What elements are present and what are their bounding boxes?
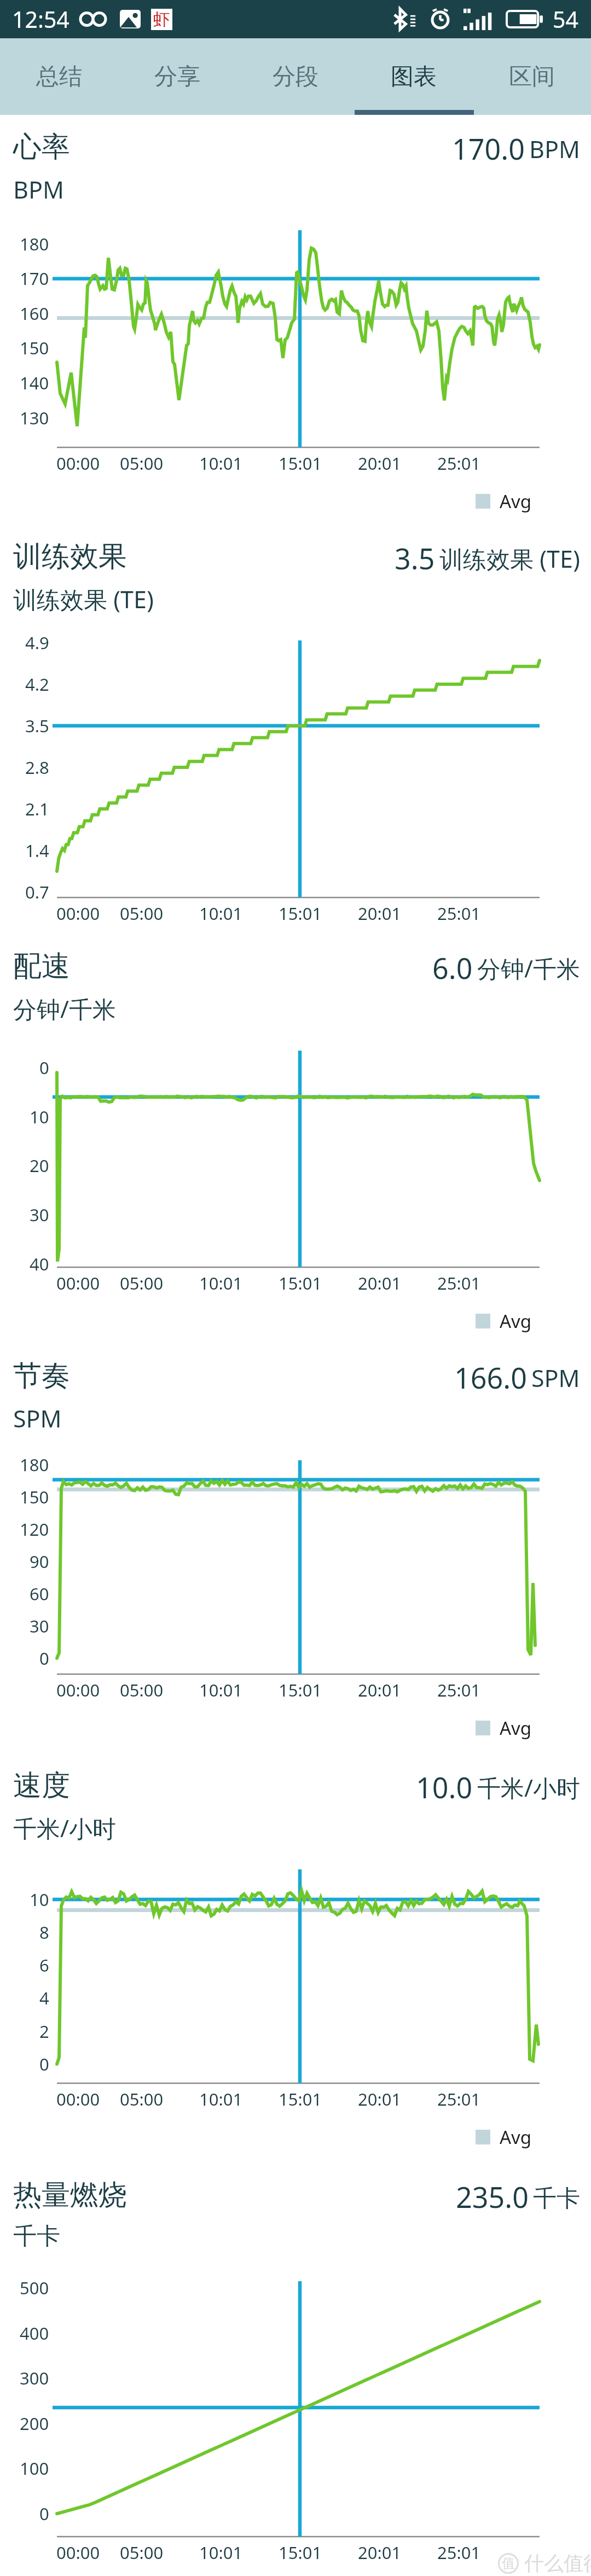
staticText: 3.5 [25, 714, 49, 737]
staticText: 130 [20, 406, 49, 429]
staticText: Avg [500, 489, 532, 514]
staticText: 6.0 [432, 948, 473, 987]
button[interactable]: 总结 [0, 38, 118, 115]
staticText: 15:01 [279, 452, 322, 475]
staticText: BPM [13, 173, 64, 206]
staticText: 2.1 [25, 797, 49, 820]
staticText: 0 [39, 2502, 49, 2525]
staticText: 00:00 [56, 452, 100, 475]
staticText: 什么值得买 [524, 2551, 591, 2575]
staticText: 总结 [36, 62, 82, 91]
staticText: 6 [39, 1954, 49, 1977]
staticText: 400 [20, 2322, 49, 2345]
staticText: 千卡 [13, 2222, 60, 2251]
staticText: 20:01 [358, 1679, 402, 1701]
staticText: 8 [39, 1921, 49, 1944]
staticText: 100 [20, 2457, 49, 2480]
staticText: 10:01 [199, 2088, 243, 2111]
button[interactable]: 分享 [118, 38, 236, 115]
staticText: 分钟/千米 [477, 952, 580, 984]
staticText: 训练效果 [13, 539, 127, 575]
staticText: 05:00 [120, 902, 164, 925]
staticText: 千卡 [533, 2184, 580, 2213]
staticText: 200 [20, 2412, 49, 2435]
staticText: 25:01 [437, 1272, 481, 1295]
staticText: 10:01 [199, 1272, 243, 1295]
staticText: 4 [39, 1986, 49, 2009]
staticText: 0.7 [25, 881, 49, 904]
staticText: 分享 [154, 62, 200, 91]
staticText: 30 [30, 1615, 49, 1637]
staticText: 10 [30, 1888, 49, 1911]
button[interactable]: 分段 [236, 38, 355, 115]
staticText: 25:01 [437, 902, 481, 925]
staticText: 3.5 [395, 539, 435, 578]
staticText: 60 [30, 1582, 49, 1605]
staticText: 300 [20, 2367, 49, 2389]
staticText: BPM [529, 133, 580, 165]
staticText: 54 [553, 4, 578, 34]
staticText: 分段 [273, 62, 318, 91]
staticText: 热量燃烧 [13, 2177, 127, 2213]
staticText: 00:00 [56, 902, 100, 925]
staticText: 训练效果 (TE) [439, 543, 580, 575]
staticText: 4.2 [25, 673, 49, 696]
staticText: 180 [20, 232, 49, 255]
staticText: 图表 [391, 62, 437, 91]
staticText: 00:00 [56, 1679, 100, 1701]
staticText: 10 [30, 1105, 49, 1128]
staticText: 20 [30, 1154, 49, 1177]
staticText: Avg [500, 2125, 532, 2149]
staticText: 05:00 [120, 2541, 164, 2564]
staticText: 节奏 [13, 1358, 70, 1394]
staticText: 12:54 [12, 4, 69, 34]
staticText: 心率 [13, 129, 70, 165]
staticText: 10:01 [199, 452, 243, 475]
staticText: 配速 [13, 948, 70, 984]
staticText: 10.0 [416, 1768, 473, 1806]
staticText: 00:00 [56, 2541, 100, 2564]
staticText: 120 [20, 1518, 49, 1541]
staticText: 25:01 [437, 452, 481, 475]
staticText: 15:01 [279, 902, 322, 925]
staticText: 训练效果 (TE) [13, 583, 154, 615]
staticText: 2 [39, 2020, 49, 2043]
staticText: 140 [20, 371, 49, 394]
staticText: 05:00 [120, 452, 164, 475]
staticText: 10:01 [199, 1679, 243, 1701]
staticText: 150 [20, 1485, 49, 1508]
staticText: 25:01 [437, 2088, 481, 2111]
staticText: 166.0 [454, 1358, 527, 1397]
staticText: 千米/小时 [13, 1812, 116, 1844]
staticText: SPM [13, 1402, 62, 1435]
staticText: SPM [531, 1362, 580, 1394]
staticText: 15:01 [279, 2541, 322, 2564]
staticText: 0 [39, 1647, 49, 1670]
staticText: 千米/小时 [477, 1771, 580, 1804]
staticText: 区间 [509, 62, 555, 91]
staticText: 0 [39, 1056, 49, 1079]
staticText: 05:00 [120, 2088, 164, 2111]
button[interactable]: 区间 [473, 38, 591, 115]
staticText: Avg [500, 1716, 532, 1740]
staticText: 20:01 [358, 2088, 402, 2111]
staticText: 20:01 [358, 902, 402, 925]
staticText: 4.9 [25, 631, 49, 654]
staticText: 160 [20, 302, 49, 325]
staticText: 15:01 [279, 2088, 322, 2111]
staticText: 2.8 [25, 756, 49, 779]
staticText: 05:00 [120, 1679, 164, 1701]
staticText: 值 [502, 2555, 515, 2572]
button[interactable]: 图表 [355, 38, 473, 115]
staticText: 40 [30, 1252, 49, 1275]
staticText: 170 [20, 267, 49, 290]
staticText: 180 [20, 1453, 49, 1476]
staticText: Avg [500, 1309, 532, 1333]
staticText: 20:01 [358, 452, 402, 475]
staticText: 25:01 [437, 1679, 481, 1701]
staticText: 235.0 [456, 2177, 529, 2216]
staticText: 10:01 [199, 2541, 243, 2564]
staticText: 10:01 [199, 902, 243, 925]
staticText: 20:01 [358, 1272, 402, 1295]
staticText: 170.0 [452, 129, 525, 168]
